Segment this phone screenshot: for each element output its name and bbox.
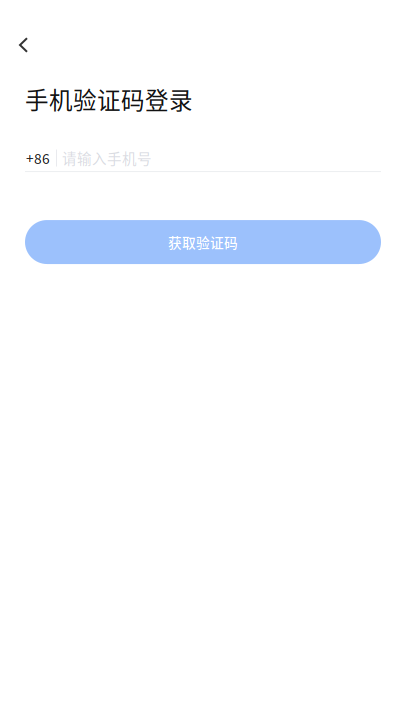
staticText: 请输入手机号 [62,147,152,168]
button[interactable]: Back [8,23,52,67]
button[interactable]: 获取验证码 [25,220,381,264]
staticText: 手机验证码登录 [25,82,193,116]
staticText: 获取验证码 [168,232,238,252]
staticText: +86 [26,148,50,168]
